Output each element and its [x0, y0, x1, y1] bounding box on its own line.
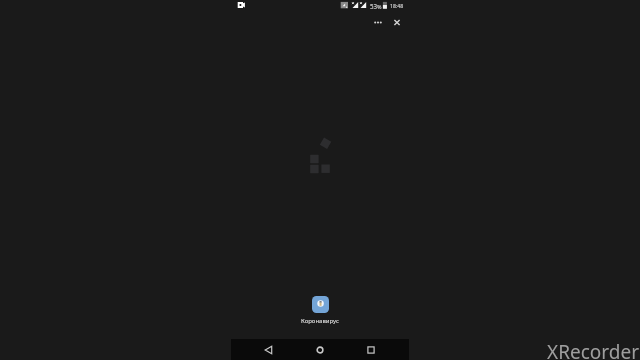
- button[interactable]: Home: [307, 339, 333, 360]
- button[interactable]: Close: [389, 14, 405, 30]
- button[interactable]: More options: [369, 14, 386, 31]
- button[interactable]: Back: [256, 339, 282, 360]
- button[interactable]: Коронавирус app: [312, 296, 329, 313]
- staticText: 53: [370, 2, 378, 10]
- staticText: %: [377, 3, 382, 10]
- button[interactable]: Recent apps: [358, 339, 384, 360]
- staticText: Коронавирус: [301, 317, 339, 325]
- staticText: 18:48: [390, 2, 404, 9]
- staticText: XRecorder: [547, 339, 639, 360]
